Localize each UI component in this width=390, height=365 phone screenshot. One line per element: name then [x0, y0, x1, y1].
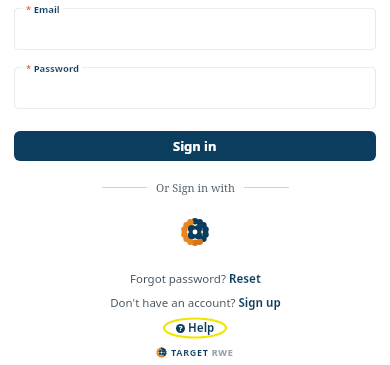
button[interactable]: Don't have an account? Sign up: [0, 295, 390, 311]
button[interactable]: [14, 67, 376, 109]
button[interactable]: Forgot password? Reset: [0, 271, 390, 287]
button[interactable]: Sign in with Target RWE: [179, 216, 211, 248]
staticText: ?: [179, 324, 183, 333]
button[interactable]: Sign in: [14, 131, 376, 161]
staticText: Or Sign in with: [156, 180, 235, 195]
staticText: Help: [188, 320, 215, 336]
staticText: * Email: [26, 3, 60, 16]
staticText: TARGET RWE: [171, 346, 234, 358]
staticText: Forgot password? Reset: [130, 271, 261, 287]
button[interactable]: ?: [164, 318, 226, 338]
staticText: Don't have an account? Sign up: [110, 295, 281, 311]
button[interactable]: [14, 8, 376, 50]
staticText: Sign in: [173, 137, 217, 155]
staticText: * Password: [26, 62, 79, 75]
